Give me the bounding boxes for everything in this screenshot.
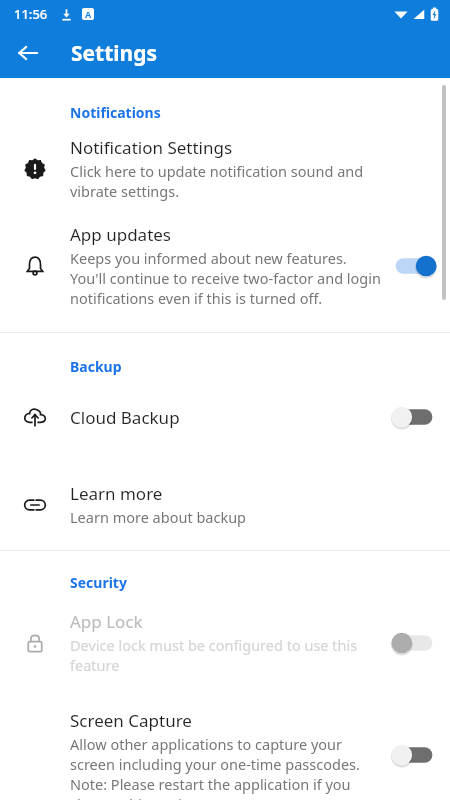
staticText: Click here to update notification sound …	[70, 161, 382, 201]
staticText: Device lock must be configured to use th…	[70, 635, 382, 675]
staticText: Learn more about backup	[70, 507, 247, 527]
staticText: App updates	[70, 223, 172, 246]
button[interactable]: Notification Settings	[0, 136, 450, 201]
staticText: Allow other applications to capture your…	[70, 734, 382, 800]
staticText: Settings	[71, 39, 158, 68]
button[interactable]: Cloud Backup	[0, 398, 450, 436]
button[interactable]: Toggle setting	[391, 741, 437, 769]
staticText: App Lock	[70, 610, 143, 633]
staticText: Security	[70, 573, 127, 592]
staticText: Cloud Backup	[70, 406, 180, 429]
button[interactable]: Learn more	[0, 482, 450, 527]
staticText: Screen Capture	[70, 709, 192, 732]
staticText: Notification Settings	[70, 136, 233, 159]
staticText: Learn more	[70, 482, 163, 505]
staticText: 11:56	[14, 5, 48, 23]
staticText: Notifications	[70, 103, 161, 122]
button[interactable]: Toggle setting	[391, 403, 437, 431]
button[interactable]: Toggle setting	[391, 629, 437, 657]
button[interactable]: App updates	[0, 223, 450, 308]
button[interactable]: Back	[6, 31, 50, 75]
staticText: Keeps you informed about new features. Y…	[70, 248, 382, 308]
button[interactable]: App Lock	[0, 610, 450, 675]
button[interactable]: Toggle setting	[391, 252, 437, 280]
staticText: Backup	[70, 357, 122, 376]
button[interactable]: Screen Capture	[0, 709, 450, 800]
staticText: A	[85, 8, 92, 20]
